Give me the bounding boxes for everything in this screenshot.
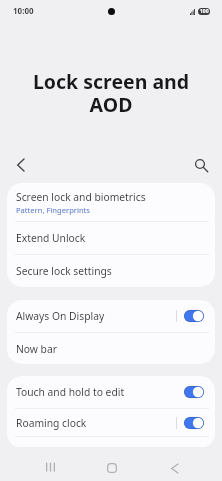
staticText: Screen lock and biometrics [16, 190, 146, 204]
button[interactable]: Now bar [7, 333, 215, 364]
button[interactable]: Search [188, 152, 214, 178]
staticText: Now bar [16, 342, 57, 356]
button[interactable]: Home [97, 452, 127, 481]
staticText: Roaming clock [16, 416, 176, 430]
button[interactable]: Back [159, 452, 189, 481]
staticText: Always On Display [16, 309, 176, 323]
button[interactable]: Screen lock and biometrics [7, 183, 215, 221]
staticText: Secure lock settings [16, 264, 112, 278]
button[interactable]: Roaming clock [7, 409, 215, 436]
staticText: Extend Unlock [16, 231, 86, 245]
button[interactable]: Back [7, 152, 33, 178]
button[interactable]: Secure lock settings [7, 255, 215, 287]
staticText: 10:00 [13, 5, 34, 16]
staticText: Lock screen and AOD [0, 68, 222, 118]
button[interactable]: Touch and hold to edit [7, 376, 215, 408]
staticText: Touch and hold to edit [16, 385, 176, 399]
button[interactable]: Extend Unlock [7, 222, 215, 254]
staticText: Pattern, Fingerprints [16, 205, 90, 215]
button[interactable]: Recents [35, 452, 65, 481]
staticText: 100 [200, 8, 209, 15]
button[interactable]: Always On Display [7, 300, 215, 332]
